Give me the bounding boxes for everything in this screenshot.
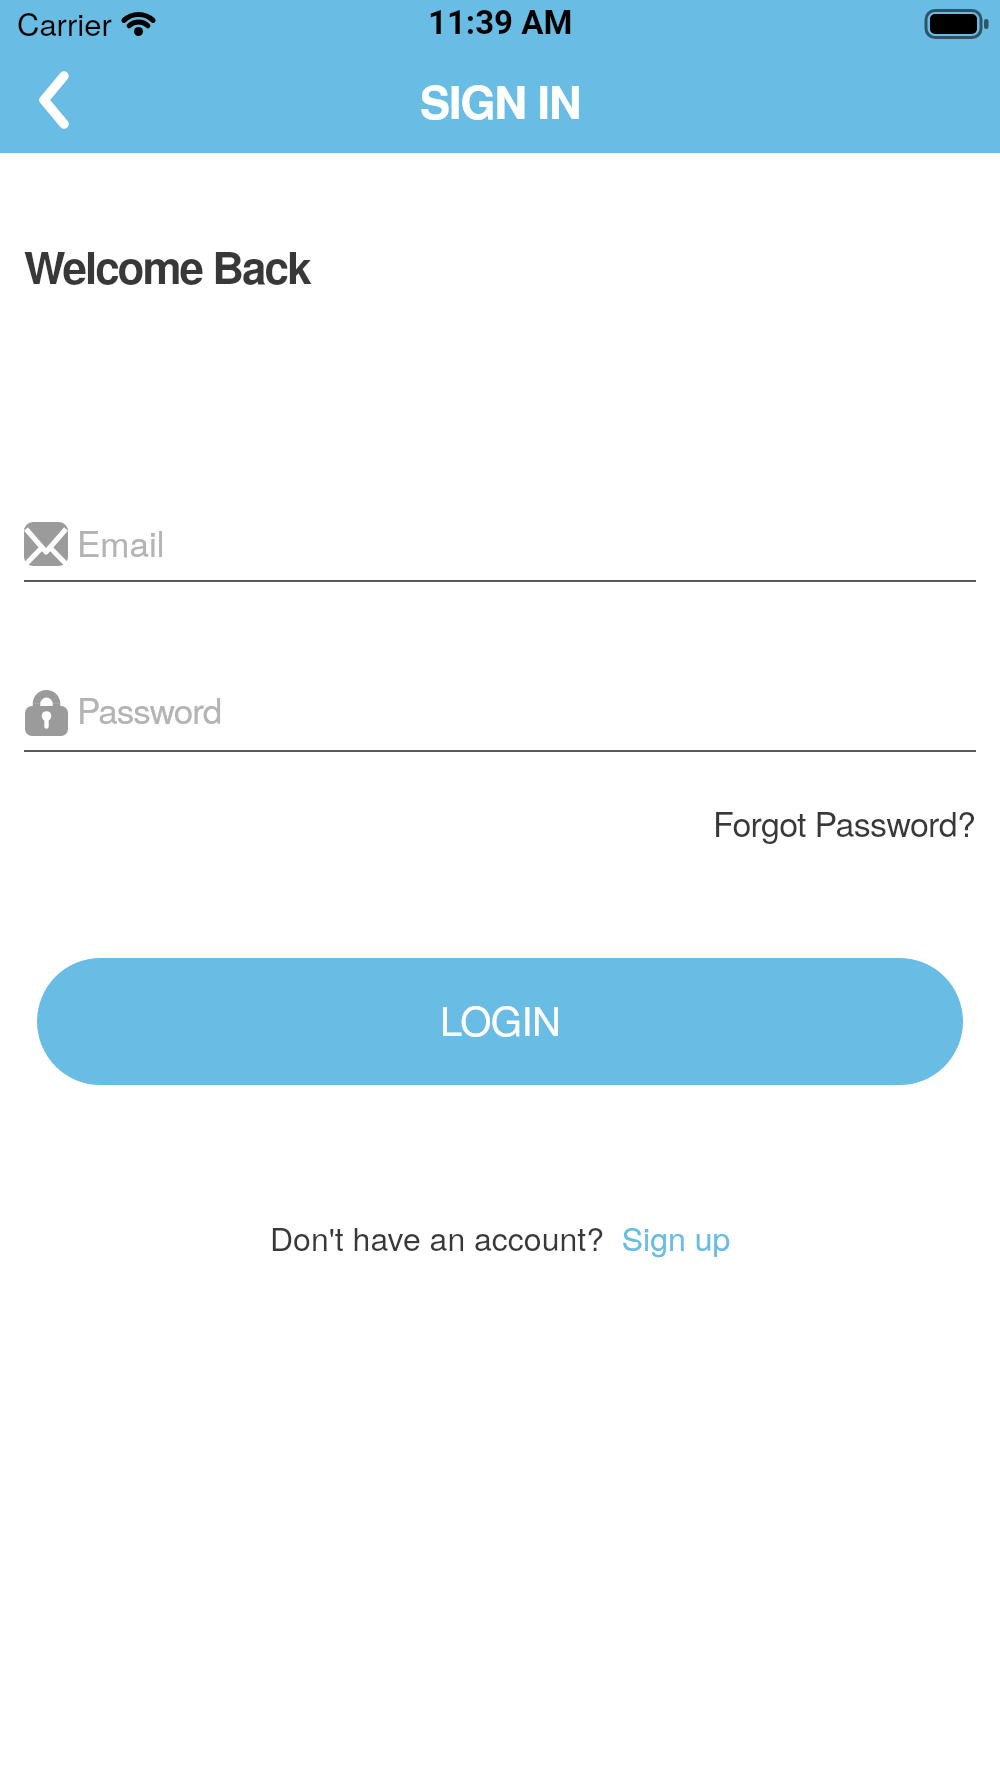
staticText: Welcome Back — [24, 234, 310, 297]
staticText: Forgot Password? — [713, 798, 976, 847]
staticText: Don't have an account? Sign up — [270, 1214, 731, 1260]
staticText: 11:39 AM — [428, 3, 573, 42]
staticText: Carrier — [17, 0, 112, 44]
button[interactable]: Don't have an account? Sign up — [270, 1214, 731, 1260]
button[interactable]: Email — [24, 505, 976, 585]
button[interactable]: Password — [24, 674, 976, 752]
button[interactable]: Forgot Password? — [713, 798, 976, 847]
button[interactable]: LOGIN — [37, 958, 963, 1085]
button[interactable] — [20, 60, 90, 140]
staticText: Email — [77, 517, 165, 567]
staticText: Password — [77, 684, 222, 734]
staticText: LOGIN — [440, 990, 561, 1047]
staticText: SIGN IN — [420, 68, 581, 132]
